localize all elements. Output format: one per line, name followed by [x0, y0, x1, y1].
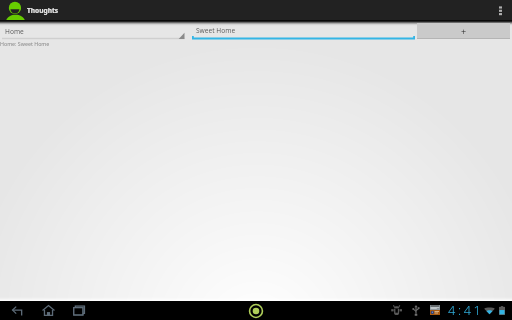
staticText: Sweet Home [196, 26, 236, 35]
other: Recording [249, 304, 263, 318]
button[interactable]: Add [417, 23, 510, 39]
staticText: 4:41 [448, 301, 484, 318]
button[interactable]: Back [8, 301, 26, 320]
button[interactable]: More options [492, 0, 512, 20]
button[interactable]: Recent apps [70, 301, 88, 320]
staticText: Home [5, 27, 24, 36]
button[interactable]: Thoughts app icon [5, 1, 26, 21]
button[interactable]: Home [0, 22, 186, 39]
button[interactable]: Home [39, 301, 57, 320]
button[interactable]: Sweet Home [192, 22, 415, 39]
staticText: + [461, 25, 467, 37]
staticText: Thoughts [27, 6, 59, 15]
staticText: Home: Sweet Home [0, 40, 50, 47]
